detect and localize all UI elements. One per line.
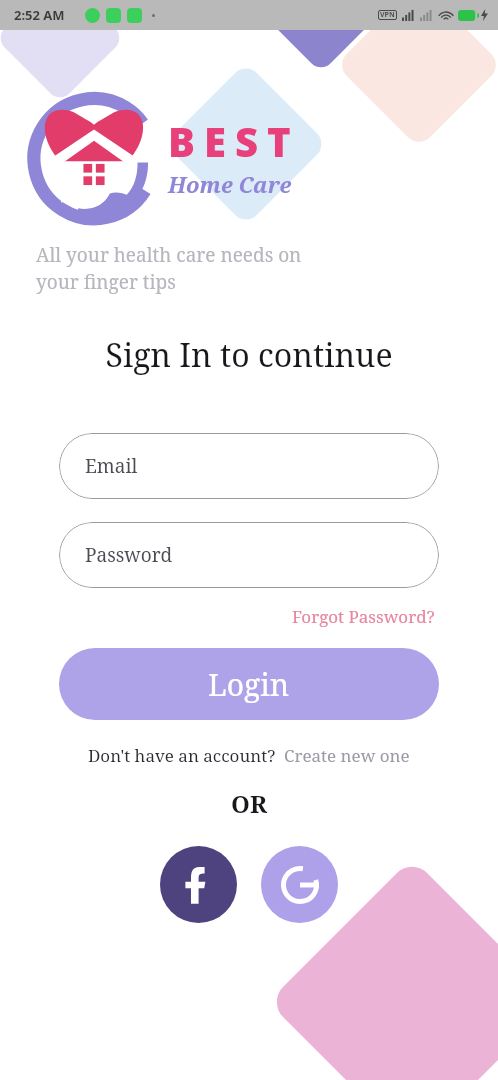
staticText: All your health care needs on your finge… bbox=[36, 242, 302, 295]
staticText: BEST bbox=[168, 114, 300, 168]
staticText: VPN bbox=[380, 10, 395, 20]
button[interactable]: Password bbox=[59, 522, 439, 588]
button[interactable]: Forgot Password? bbox=[288, 601, 439, 632]
staticText: Forgot Password? bbox=[292, 605, 435, 628]
button[interactable]: Login bbox=[59, 648, 439, 720]
staticText: OR bbox=[0, 787, 498, 820]
button[interactable]: Create new one bbox=[284, 744, 410, 767]
staticText: Password bbox=[85, 542, 173, 568]
staticText: Don't have an account? bbox=[88, 744, 276, 767]
staticText: Sign In to continue bbox=[0, 333, 498, 377]
staticText: Home Care bbox=[168, 169, 292, 199]
staticText: Login bbox=[208, 664, 290, 705]
button[interactable]: Email bbox=[59, 433, 439, 499]
button[interactable]: Sign in with Google bbox=[261, 846, 338, 923]
staticText: 2:52 AM bbox=[14, 6, 65, 24]
staticText: Email bbox=[85, 453, 138, 479]
staticText: Create new one bbox=[284, 744, 410, 767]
button[interactable]: Sign in with Facebook bbox=[160, 846, 237, 923]
